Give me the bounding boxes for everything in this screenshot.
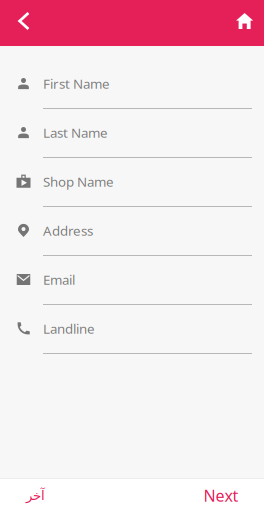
button[interactable]: First Name [16, 60, 252, 109]
button[interactable]: Last Name [16, 109, 252, 158]
staticText: First Name [43, 75, 110, 92]
button[interactable]: Home [229, 1, 260, 45]
button[interactable]: Next [194, 479, 248, 512]
button[interactable]: Address [16, 207, 252, 256]
staticText: Next [203, 485, 238, 506]
staticText: Address [43, 222, 93, 239]
button[interactable]: آخر [6, 479, 64, 512]
staticText: Landline [43, 320, 95, 337]
button[interactable]: Back [9, 1, 39, 45]
button[interactable]: Email [16, 256, 252, 305]
button[interactable]: Landline [16, 305, 252, 354]
button[interactable]: Shop Name [16, 158, 252, 207]
staticText: Shop Name [43, 173, 114, 190]
staticText: آخر [25, 488, 44, 503]
staticText: Last Name [43, 124, 108, 141]
staticText: Email [43, 271, 75, 288]
